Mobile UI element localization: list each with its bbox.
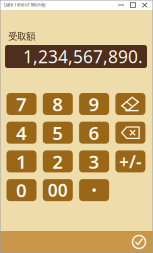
staticText: 7 [16, 92, 27, 116]
button[interactable]: Close [139, 0, 151, 10]
staticText: 4 [16, 120, 27, 145]
staticText: 受取額 [8, 31, 35, 42]
staticText: 8 [52, 92, 63, 116]
staticText: 9 [89, 92, 100, 116]
button[interactable] [115, 122, 145, 144]
button[interactable]: 0 [6, 179, 36, 201]
button[interactable]: 8 [43, 93, 73, 115]
staticText: 2 [52, 149, 63, 174]
staticText: 3 [89, 149, 100, 174]
button[interactable]: 5 [43, 122, 73, 144]
staticText: 00 [48, 179, 68, 202]
staticText: 5 [52, 120, 63, 145]
button[interactable]: 1 [6, 150, 36, 172]
staticText: +/- [119, 150, 142, 173]
button[interactable]: +/- [115, 150, 145, 172]
staticText: 0 [16, 178, 27, 202]
button[interactable]: 7 [6, 93, 36, 115]
button[interactable]: Confirm [128, 231, 150, 253]
button[interactable]: Maximize [127, 0, 139, 10]
staticText: 6 [89, 120, 100, 145]
button[interactable]: 6 [79, 122, 109, 144]
button[interactable]: 2 [43, 150, 73, 172]
button[interactable]: 9 [79, 93, 109, 115]
button[interactable] [115, 93, 145, 115]
button[interactable]: 3 [79, 150, 109, 172]
button[interactable]: 4 [6, 122, 36, 144]
button[interactable]: 00 [43, 179, 73, 201]
staticText: Dark Time of Money [4, 2, 45, 8]
button[interactable]: Minimize [115, 0, 127, 10]
staticText: 1,234,567,890. [23, 45, 143, 68]
button[interactable] [79, 179, 109, 201]
staticText: 1 [16, 149, 27, 174]
